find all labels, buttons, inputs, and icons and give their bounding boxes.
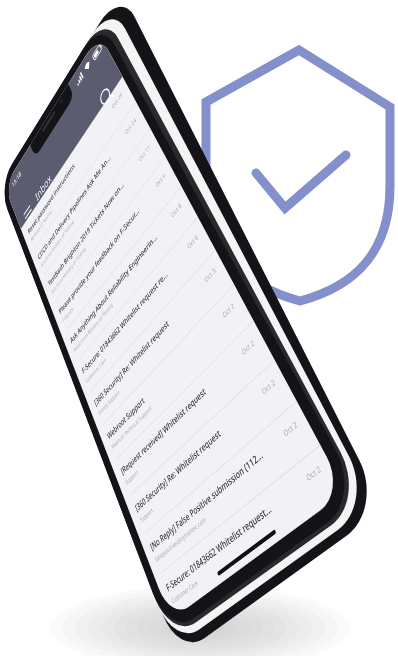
button[interactable]: Secure email inbox illustration — [0, 0, 398, 656]
